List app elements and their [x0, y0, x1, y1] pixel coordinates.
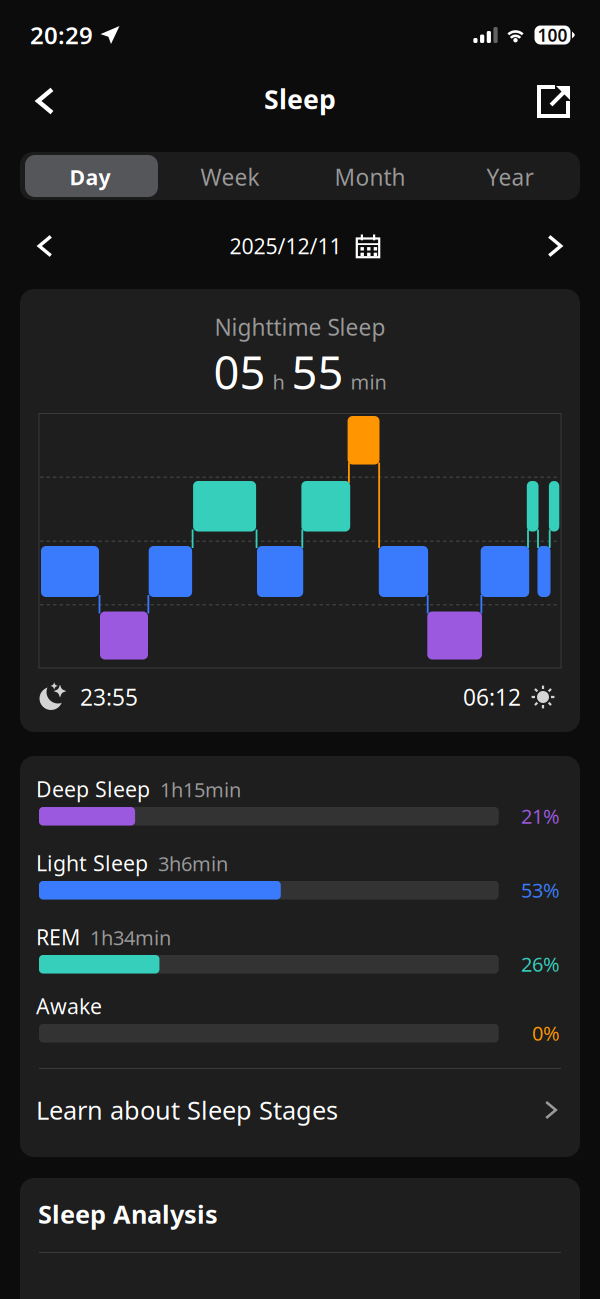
- staticText: 53%: [521, 877, 560, 903]
- staticText: 100: [537, 23, 567, 46]
- staticText: Learn about Sleep Stages: [36, 1093, 338, 1127]
- button[interactable]: Previous day: [0, 0, 600, 1299]
- staticText: Day: [69, 163, 110, 191]
- staticText: Year: [486, 162, 533, 192]
- staticText: h: [272, 368, 284, 395]
- staticText: 21%: [521, 803, 560, 829]
- staticText: 20:29: [30, 19, 93, 51]
- staticText: Sleep: [264, 81, 336, 117]
- staticText: Sleep Analysis: [38, 1197, 218, 1231]
- button[interactable]: Week: [0, 0, 600, 1299]
- staticText: 1h15min: [150, 776, 241, 803]
- staticText: 06:12: [463, 682, 521, 712]
- staticText: 0%: [532, 1020, 560, 1046]
- button[interactable]: Month: [0, 0, 600, 1299]
- staticText: Light Sleep: [36, 849, 148, 877]
- button[interactable]: Year: [0, 0, 600, 1299]
- staticText: min: [350, 368, 386, 395]
- staticText: Week: [200, 162, 259, 192]
- button[interactable]: Share: [0, 0, 600, 1299]
- button[interactable]: Back: [0, 0, 600, 1299]
- staticText: 2025/12/11: [229, 232, 341, 260]
- staticText: Month: [334, 162, 405, 192]
- staticText: Awake: [36, 992, 102, 1020]
- button[interactable]: Next day: [0, 0, 600, 1299]
- staticText: Nighttime Sleep: [214, 312, 385, 342]
- staticText: 23:55: [80, 682, 138, 712]
- staticText: 55: [291, 342, 343, 402]
- staticText: 26%: [521, 951, 560, 977]
- button[interactable]: Day: [0, 0, 600, 1299]
- staticText: 3h6min: [148, 850, 228, 877]
- staticText: REM: [36, 923, 80, 951]
- staticText: 1h34min: [80, 924, 171, 951]
- staticText: 05: [213, 342, 265, 402]
- button[interactable]: Learn about Sleep Stages: [0, 0, 600, 1299]
- staticText: Deep Sleep: [36, 775, 150, 803]
